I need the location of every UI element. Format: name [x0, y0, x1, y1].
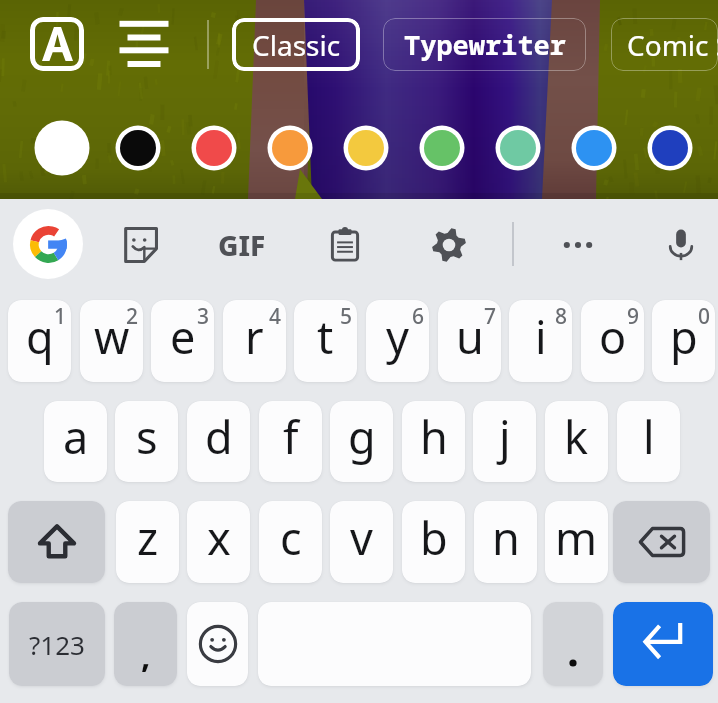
staticText: h [420, 406, 448, 467]
staticText: x [207, 507, 231, 568]
button[interactable]: Colour white [36, 125, 91, 173]
button[interactable]: q [8, 300, 71, 382]
button[interactable]: More options [552, 219, 604, 271]
staticText: l [643, 406, 655, 467]
button[interactable]: Backspace [613, 501, 710, 583]
button[interactable]: k [545, 401, 608, 482]
button[interactable]: Emoji [187, 602, 248, 686]
button[interactable]: Colour red [188, 125, 234, 171]
button[interactable]: b [402, 501, 465, 583]
staticText: b [420, 507, 448, 568]
button[interactable]: n [474, 501, 537, 583]
button[interactable]: m [545, 501, 608, 583]
button[interactable]: Classic [232, 18, 360, 71]
button[interactable]: j [473, 401, 536, 482]
button[interactable]: t [294, 300, 357, 382]
button[interactable]: Colour green [416, 125, 462, 171]
staticText: i [535, 306, 547, 367]
button[interactable]: i [509, 300, 572, 382]
button[interactable]: e [151, 300, 214, 382]
staticText: 4 [269, 302, 282, 331]
staticText: o [599, 306, 627, 367]
button[interactable]: u [438, 300, 501, 382]
button[interactable]: d [187, 401, 250, 482]
button[interactable]: Comma [114, 602, 177, 686]
button[interactable]: ?123 [9, 602, 105, 686]
button[interactable]: a [44, 401, 107, 482]
staticText: 7 [484, 302, 497, 331]
button[interactable]: x [187, 501, 250, 583]
staticText: 6 [412, 302, 425, 331]
button[interactable]: Comic Sans [611, 18, 718, 71]
button[interactable]: c [259, 501, 322, 583]
staticText: v [350, 507, 373, 568]
button[interactable]: Typewriter [383, 18, 586, 71]
staticText: Comic Sans [627, 26, 718, 64]
button[interactable]: Clipboard [319, 219, 371, 271]
button[interactable]: Colour yellow [340, 125, 386, 171]
staticText: 2 [126, 302, 139, 331]
staticText: d [205, 406, 233, 467]
staticText: y [386, 306, 409, 367]
button[interactable]: Shift [8, 501, 105, 583]
button[interactable]: Settings [423, 219, 475, 271]
button[interactable]: p [652, 300, 715, 382]
staticText: p [670, 306, 698, 367]
button[interactable]: h [402, 401, 465, 482]
button[interactable]: s [115, 401, 178, 482]
button[interactable]: y [366, 300, 429, 382]
button[interactable]: v [330, 501, 393, 583]
button[interactable]: GIF [216, 219, 268, 271]
button[interactable]: Period [543, 602, 603, 686]
button[interactable]: Voice input [655, 219, 707, 271]
staticText: r [245, 306, 264, 367]
button[interactable]: Align center [120, 20, 168, 68]
staticText: s [136, 406, 158, 467]
staticText: j [499, 406, 511, 467]
button[interactable]: Colour black [112, 125, 158, 171]
staticText: 0 [698, 302, 711, 331]
button[interactable]: Google search [13, 209, 83, 279]
staticText: , [141, 633, 151, 678]
button[interactable]: g [330, 401, 393, 482]
staticText: z [137, 507, 159, 568]
staticText: ?123 [29, 627, 85, 662]
staticText: m [555, 507, 598, 568]
staticText: n [492, 507, 520, 568]
staticText: c [280, 507, 302, 568]
staticText: 5 [340, 302, 353, 331]
button[interactable]: w [80, 300, 143, 382]
staticText: Typewriter [404, 26, 566, 63]
staticText: g [348, 406, 376, 467]
staticText: 3 [197, 302, 210, 331]
button[interactable]: Colour navy [644, 125, 690, 171]
button[interactable]: l [617, 401, 680, 482]
button[interactable]: z [116, 501, 179, 583]
staticText: 1 [54, 302, 67, 331]
staticText: GIF [218, 226, 266, 264]
button[interactable]: Colour orange [264, 125, 310, 171]
button[interactable]: f [259, 401, 322, 482]
button[interactable]: Enter [613, 602, 713, 686]
staticText: w [94, 306, 130, 367]
button[interactable]: o [581, 300, 644, 382]
staticText: 9 [627, 302, 640, 331]
staticText: t [317, 306, 334, 367]
staticText: 8 [555, 302, 568, 331]
staticText: k [564, 406, 589, 467]
staticText: f [283, 406, 299, 467]
staticText: q [26, 306, 54, 367]
button[interactable]: Colour blue [568, 125, 614, 171]
button[interactable]: Stickers [114, 219, 166, 271]
staticText: Classic [252, 26, 341, 64]
button[interactable]: Text style [30, 17, 84, 71]
button[interactable]: r [223, 300, 286, 382]
button[interactable]: Colour teal [492, 125, 538, 171]
staticText: a [63, 406, 89, 467]
staticText: e [170, 306, 196, 367]
staticText: u [456, 306, 484, 367]
